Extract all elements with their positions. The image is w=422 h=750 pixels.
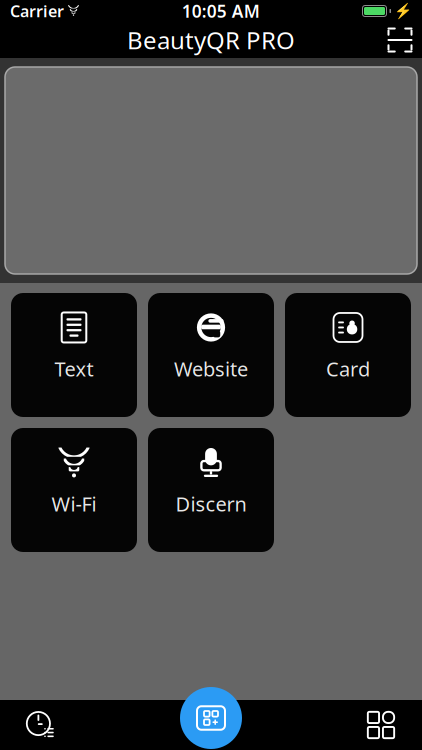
staticText: Text xyxy=(54,355,93,382)
button[interactable]: Discern xyxy=(148,428,274,552)
staticText: Card xyxy=(326,355,370,382)
button[interactable]: Wi-Fi xyxy=(11,428,137,552)
staticText: Discern xyxy=(175,490,246,517)
button[interactable]: Scan QR code xyxy=(378,22,422,58)
staticText: BeautyQR PRO xyxy=(127,24,295,56)
staticText: Carrier xyxy=(10,0,64,22)
button[interactable]: Create new code xyxy=(180,687,242,749)
staticText: ⚡ xyxy=(394,3,412,19)
button[interactable]: History xyxy=(6,700,76,750)
button[interactable]: Templates xyxy=(346,700,416,750)
staticText: 10:05 AM xyxy=(182,0,260,22)
button[interactable]: Website xyxy=(148,293,274,417)
staticText: Website xyxy=(174,355,248,382)
staticText: Wi-Fi xyxy=(51,490,96,517)
button[interactable]: Text xyxy=(11,293,137,417)
button[interactable]: Card xyxy=(285,293,411,417)
